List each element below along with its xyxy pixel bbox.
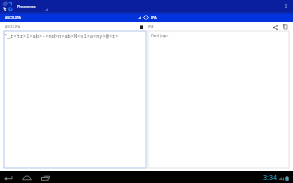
button[interactable]: App icon: [2, 1, 13, 12]
staticText: ASCII-IPA: [5, 24, 21, 29]
staticText: "_r<tr>l<ab>-<nd>n<ab>N<vl>a<ny>@<r>: [4, 32, 119, 39]
button[interactable]: Back: [3, 172, 14, 183]
staticText: IPA: [148, 24, 154, 29]
button[interactable]: Home: [21, 172, 32, 183]
staticText: IPA: [151, 15, 157, 20]
staticText: Phonemes: [17, 4, 36, 9]
button[interactable]: Clear: [137, 22, 145, 31]
staticText: 3:34: [263, 173, 277, 183]
button[interactable]: Copy: [281, 22, 289, 31]
staticText: (ˈlɪn)|ɑp>: [151, 33, 169, 39]
button[interactable]: More options: [283, 1, 289, 11]
staticText: ASCII-IPA: [5, 15, 21, 20]
button[interactable]: Share: [271, 23, 279, 31]
button[interactable]: Recents: [40, 172, 51, 183]
